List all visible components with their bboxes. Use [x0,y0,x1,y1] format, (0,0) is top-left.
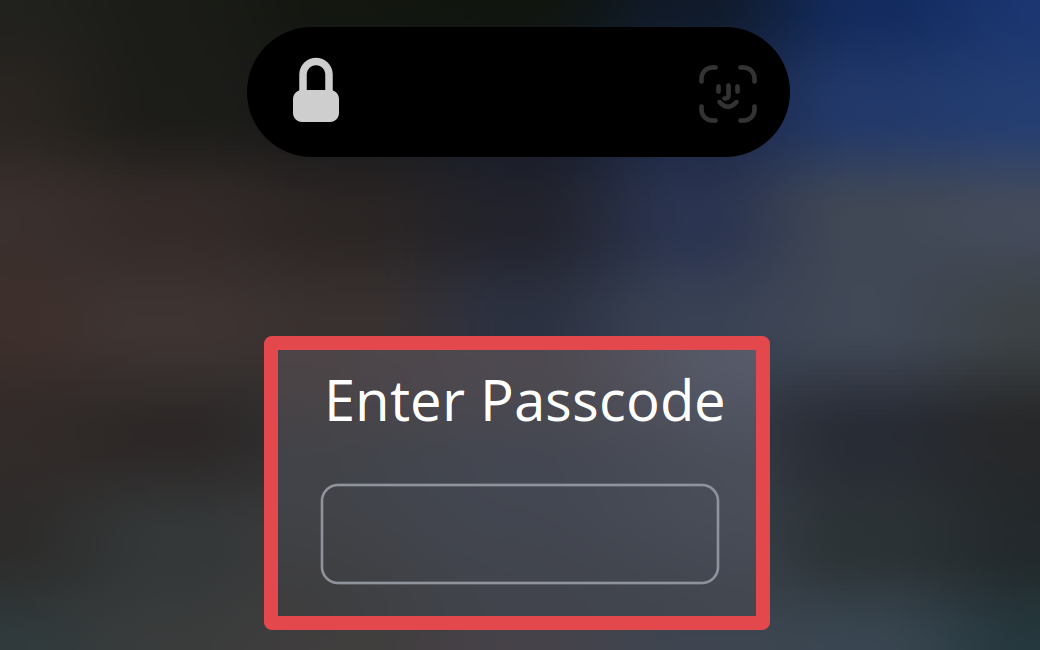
button[interactable]: Locked [293,61,339,122]
staticText: Enter Passcode [324,362,726,436]
button[interactable]: Face ID [699,65,757,123]
button[interactable]: Passcode field [322,485,718,583]
